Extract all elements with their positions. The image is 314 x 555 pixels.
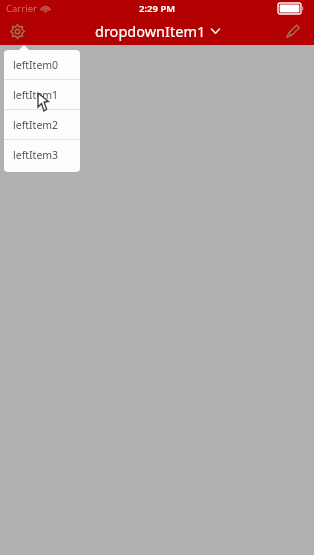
button[interactable]: leftItem2 [4, 110, 80, 139]
staticText: leftItem1 [13, 88, 59, 102]
button[interactable]: leftItem0 [4, 50, 80, 79]
staticText: leftItem0 [13, 58, 59, 72]
staticText: 2:29 PM [139, 2, 176, 15]
button[interactable]: leftItem3 [4, 140, 80, 169]
button[interactable]: dropdownItem1 [95, 21, 220, 41]
staticText: dropdownItem1 [95, 21, 206, 41]
staticText: Carrier [6, 2, 37, 15]
button[interactable]: Settings [0, 17, 34, 45]
staticText: leftItem3 [13, 148, 59, 162]
button[interactable]: Edit [280, 17, 306, 45]
button[interactable]: leftItem1 [4, 80, 80, 109]
staticText: leftItem2 [13, 118, 59, 132]
